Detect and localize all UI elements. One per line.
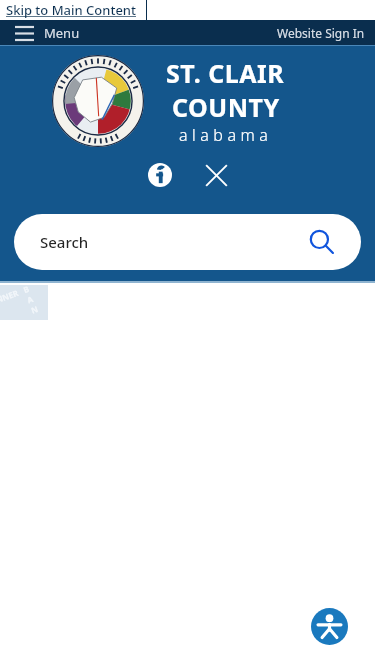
staticText: Website Sign In — [277, 25, 365, 41]
staticText: BANNER — [0, 287, 20, 309]
staticText: alabama — [179, 124, 273, 146]
staticText: BANNER — [22, 282, 41, 318]
staticText: ST. CLAIR — [166, 56, 285, 90]
button[interactable]: Skip to Main Content — [0, 1, 143, 19]
button[interactable]: Menu — [12, 21, 83, 45]
button[interactable]: Website Sign In — [267, 21, 375, 45]
button[interactable]: Accessibility options — [311, 608, 348, 645]
staticText: Skip to Main Content — [6, 1, 137, 19]
button[interactable]: Search — [14, 214, 361, 270]
button[interactable]: St. Clair County Alabama home — [52, 55, 285, 147]
staticText: Menu — [44, 24, 80, 42]
button[interactable]: Facebook — [144, 159, 176, 191]
button[interactable]: Banner — [0, 285, 48, 320]
staticText: Search — [40, 232, 89, 252]
staticText: COUNTY — [172, 90, 280, 124]
button[interactable]: X — [201, 160, 232, 191]
